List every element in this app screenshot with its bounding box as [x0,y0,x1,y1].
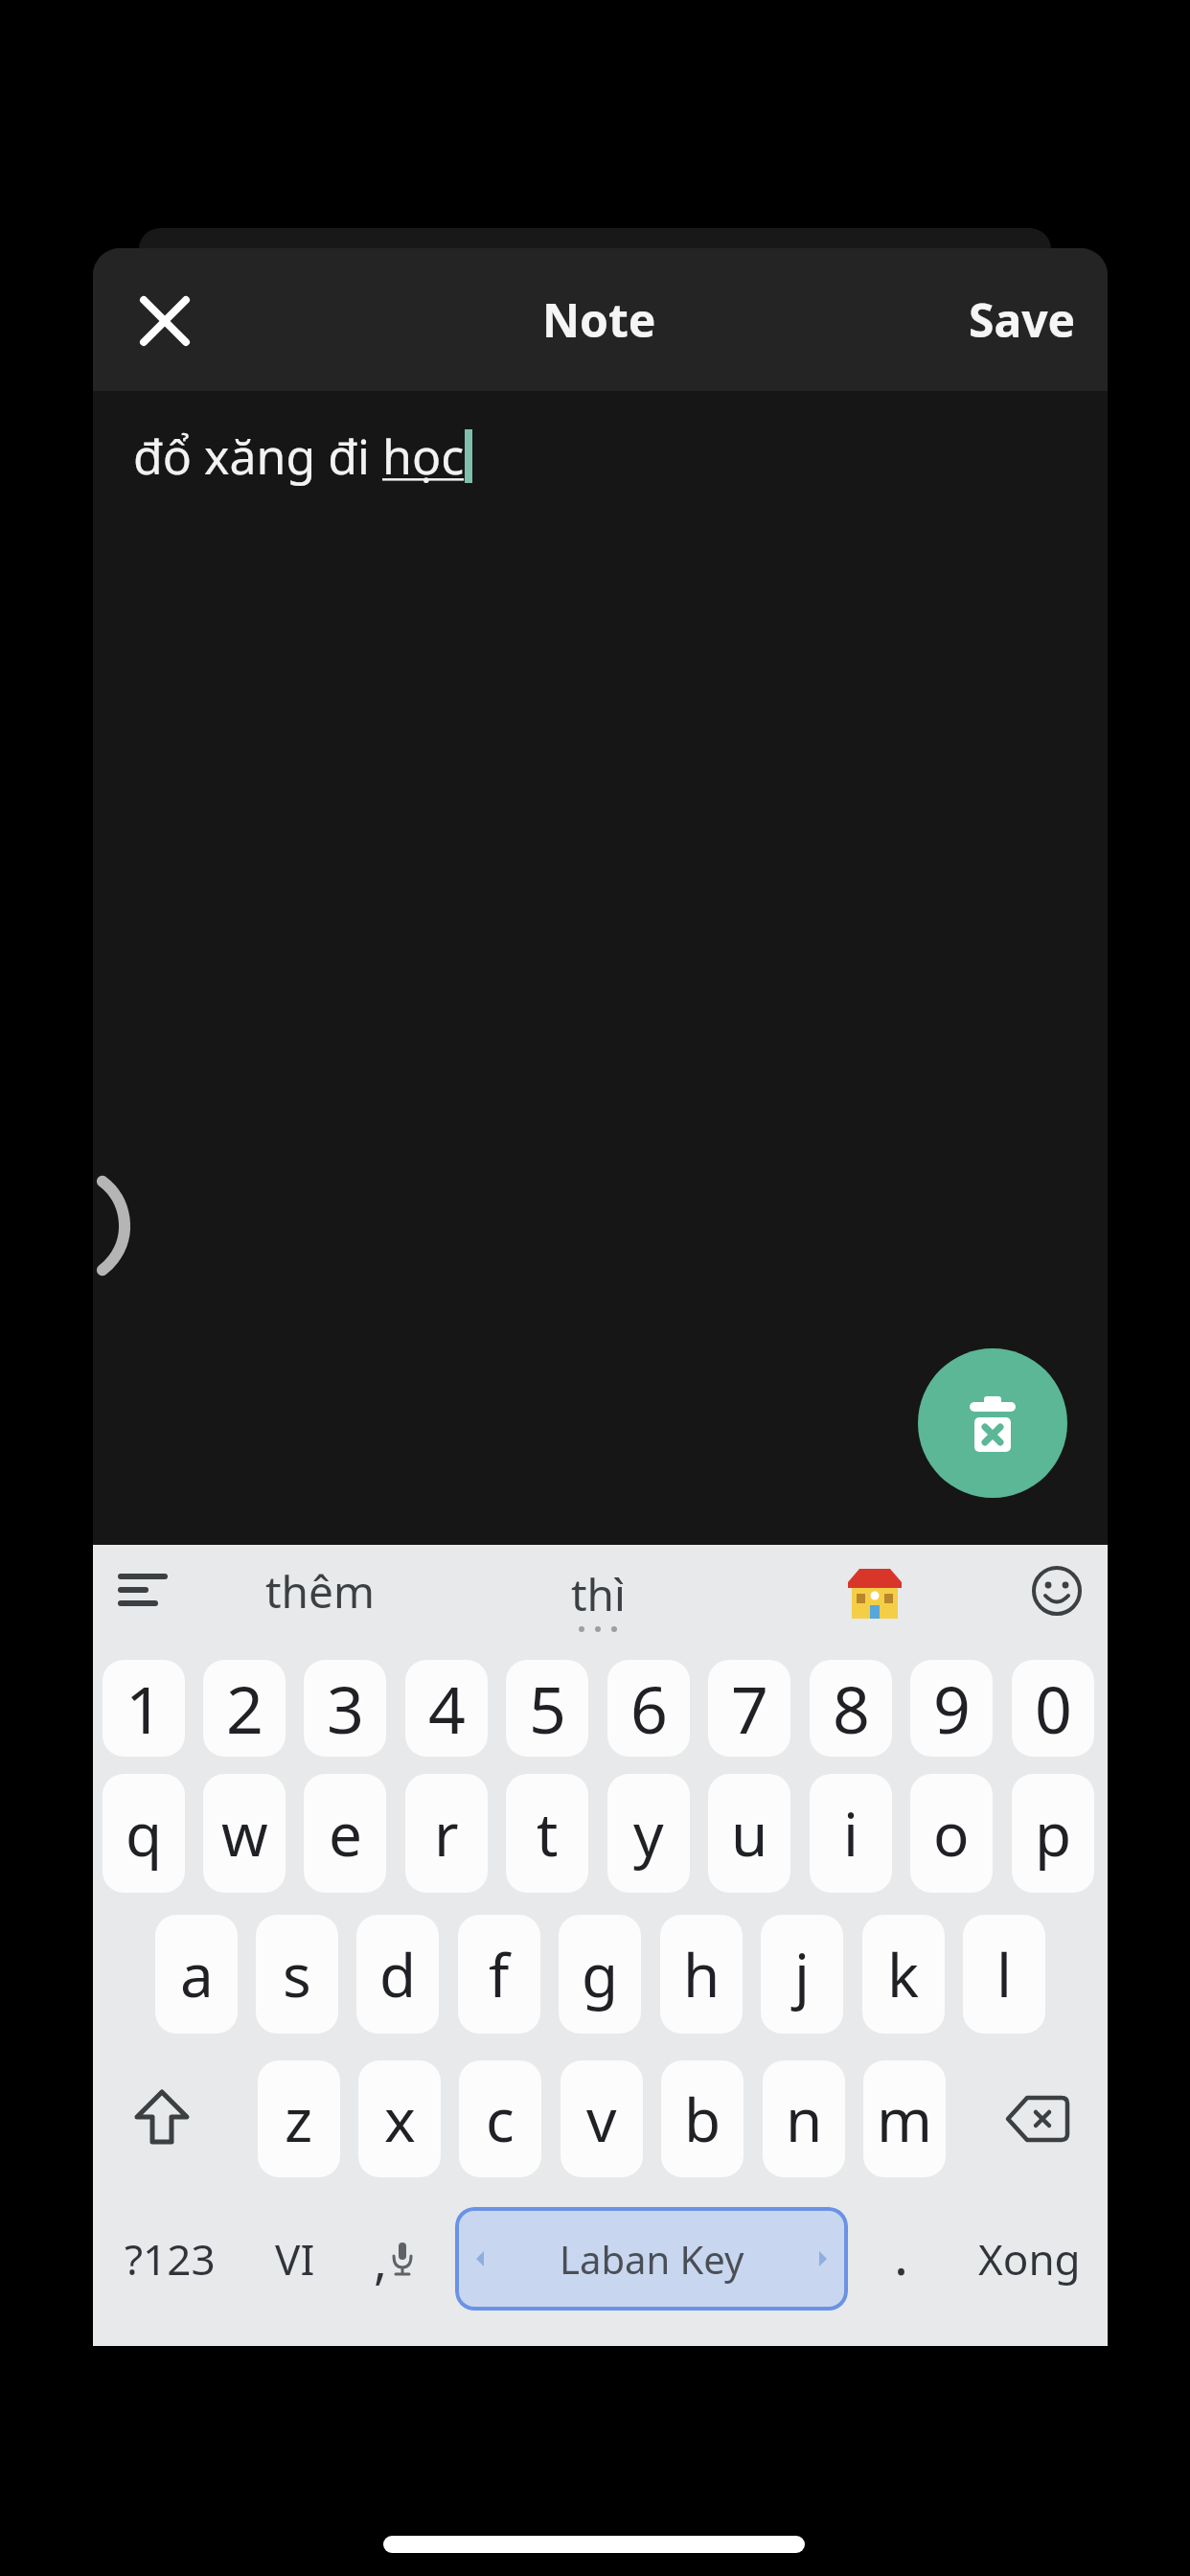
button[interactable]: t [506,1774,588,1893]
button[interactable] [114,2071,210,2167]
staticText: j [794,1934,810,2014]
button[interactable] [125,281,205,361]
button[interactable] [1017,1551,1097,1631]
button[interactable]: 5 [506,1660,588,1757]
button[interactable]: n [763,2060,845,2177]
button[interactable]: u [708,1774,790,1893]
staticText: 9 [933,1664,971,1753]
staticText: g [582,1934,619,2014]
button[interactable]: v [561,2060,643,2177]
button[interactable]: z [258,2060,340,2177]
button[interactable]: p [1012,1774,1094,1893]
staticText: Note [542,288,656,351]
button[interactable]: r [405,1774,488,1893]
button[interactable]: a [155,1915,238,2034]
staticText: h [683,1934,721,2014]
staticText: Xong [978,2230,1081,2288]
staticText: c [486,2079,515,2159]
staticText: 7 [731,1664,768,1753]
staticText: f [489,1934,510,2014]
button[interactable]: k [862,1915,945,2034]
staticText: b [684,2079,721,2159]
button[interactable]: q [103,1774,185,1893]
button[interactable]: j [761,1915,843,2034]
button[interactable]: e [304,1774,386,1893]
button[interactable]: ?123 [93,2207,246,2311]
staticText: a [180,1934,214,2014]
staticText: r [434,1793,459,1874]
button[interactable]: l [963,1915,1045,2034]
button[interactable]: 0 [1012,1660,1094,1757]
button[interactable]: w [203,1774,286,1893]
button[interactable] [918,1348,1067,1498]
staticText: 1 [126,1664,163,1753]
button[interactable]: 2 [203,1660,286,1757]
staticText: u [731,1793,768,1874]
button[interactable]: . [854,2202,950,2306]
button[interactable]: 4 [405,1660,488,1757]
staticText: w [221,1793,268,1874]
button[interactable]: 8 [810,1660,892,1757]
button[interactable]: i [810,1774,892,1893]
staticText: ?123 [125,2230,216,2288]
staticText: 6 [630,1664,668,1753]
button[interactable]: c [459,2060,541,2177]
button[interactable]: f [458,1915,540,2034]
staticText: d [379,1934,417,2014]
staticText: 3 [327,1664,364,1753]
staticText: t [537,1793,559,1874]
button[interactable]: g [559,1915,641,2034]
button[interactable]: o [910,1774,993,1893]
button[interactable]: 9 [910,1660,993,1757]
button[interactable]: b [661,2060,744,2177]
button[interactable]: VI [238,2207,353,2311]
staticText: l [996,1934,1012,2014]
button[interactable]: 3 [304,1660,386,1757]
staticText: 5 [529,1664,566,1753]
staticText: n [786,2079,823,2159]
button[interactable]: Save [879,271,1166,367]
button[interactable]: Xong [952,2207,1106,2311]
staticText: VI [275,2230,315,2288]
staticText: q [126,1793,163,1874]
staticText: y [633,1793,664,1874]
button[interactable]: d [356,1915,439,2034]
staticText: thì [571,1564,626,1624]
staticText: 2 [226,1664,263,1753]
staticText: Save [969,288,1076,351]
staticText: v [586,2079,617,2159]
staticText: k [887,1934,920,2014]
staticText: . [894,2218,909,2290]
button[interactable]: , [346,2207,442,2311]
button[interactable]: Laban Key [455,2207,848,2311]
staticText: o [933,1793,970,1874]
button[interactable]: thì [454,1546,742,1642]
staticText: đổ xăng đi học [133,424,465,489]
button[interactable]: 7 [708,1660,790,1757]
button[interactable]: 6 [607,1660,690,1757]
staticText: m [877,2079,932,2159]
button[interactable]: y [607,1774,690,1893]
staticText: s [283,1934,311,2014]
staticText: z [285,2079,313,2159]
staticText: , [374,2225,387,2293]
staticText: p [1035,1793,1072,1874]
staticText: thêm [265,1561,375,1621]
button[interactable] [103,1550,183,1630]
staticText: x [384,2079,416,2159]
staticText: i [843,1793,858,1874]
button[interactable]: x [358,2060,441,2177]
button[interactable]: h [660,1915,743,2034]
staticText: 0 [1035,1664,1072,1753]
button[interactable]: m [863,2060,946,2177]
staticText: Laban Key [560,2233,744,2285]
button[interactable] [990,2071,1086,2167]
button[interactable]: 1 [103,1660,185,1757]
staticText: e [329,1793,362,1874]
button[interactable]: thêm [176,1543,464,1639]
button[interactable] [848,1565,902,1619]
staticText: 8 [833,1664,870,1753]
staticText: 4 [428,1664,466,1753]
button[interactable]: s [256,1915,338,2034]
